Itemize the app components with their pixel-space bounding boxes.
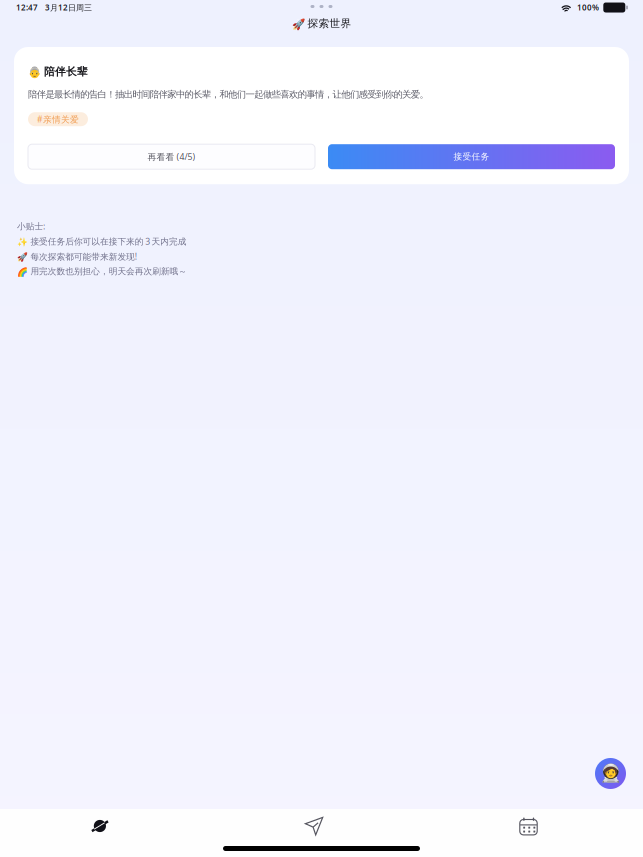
staticText: 🚀 每次探索都可能带来新发现! [17,251,137,262]
staticText: 👵 陪伴长辈 [28,65,88,78]
staticText: 3月12日周三 [45,2,92,13]
button[interactable]: 探索 [0,813,200,839]
button[interactable]: 再看看 (4/5) [28,144,315,169]
staticText: 🚀 探索世界 [291,17,351,30]
button[interactable]: 发送 [200,813,428,839]
staticText: 接受任务 [453,151,489,162]
staticText: 小贴士: [17,220,45,232]
staticText: 再看看 (4/5) [147,151,195,163]
staticText: 100% [577,2,599,13]
button[interactable]: 探索伙伴 [595,758,626,789]
staticText: 陪伴是最长情的告白！抽出时间陪伴家中的长辈，和他们一起做些喜欢的事情，让他们感受… [28,88,428,100]
staticText: #亲情关爱 [37,113,79,125]
staticText: 🧑‍🚀 [599,763,621,784]
staticText: ✨ 接受任务后你可以在接下来的 3 天内完成 [17,235,187,247]
button[interactable]: 日历 [428,813,629,839]
staticText: 12:47 [16,2,38,13]
staticText: 🌈 用完次数也别担心，明天会再次刷新哦～ [17,266,187,277]
button[interactable]: 接受任务 [328,144,615,169]
